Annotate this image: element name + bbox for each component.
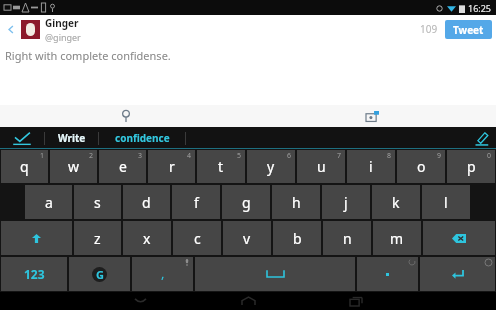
button[interactable]: Handwriting — [466, 127, 496, 149]
button[interactable]: a — [25, 185, 72, 219]
staticText: 5 — [237, 151, 242, 161]
staticText: Write — [58, 131, 86, 145]
staticText: v — [243, 229, 251, 248]
button[interactable]: Add location — [116, 106, 136, 126]
staticText: 16:25 — [468, 2, 492, 14]
staticText: b — [293, 229, 302, 248]
button[interactable]: k — [372, 185, 420, 219]
staticText: @ginger — [45, 31, 81, 43]
staticText: , — [161, 264, 165, 282]
staticText: Right with complete confidense. — [5, 48, 171, 63]
staticText: l — [444, 193, 448, 212]
staticText: f — [194, 193, 199, 212]
button[interactable]: b — [273, 221, 321, 255]
button[interactable]: r — [148, 150, 195, 183]
staticText: 109 — [420, 22, 438, 36]
button[interactable]: Tweet — [445, 20, 492, 39]
button[interactable]: e — [99, 150, 146, 183]
staticText: 9 — [437, 151, 442, 161]
staticText: 2 — [89, 151, 94, 161]
button[interactable]: z — [74, 221, 121, 255]
button[interactable]: s — [74, 185, 121, 219]
button[interactable]: Home — [212, 292, 284, 310]
staticText: c — [194, 229, 201, 248]
button[interactable]: Shift — [1, 221, 72, 255]
staticText: w — [68, 157, 80, 176]
button[interactable]: l — [422, 185, 470, 219]
staticText: o — [417, 157, 426, 176]
button[interactable]: g — [222, 185, 270, 219]
staticText: 1 — [40, 151, 45, 161]
staticText: 123 — [24, 266, 45, 282]
button[interactable]: o — [397, 150, 445, 183]
button[interactable]: u — [297, 150, 345, 183]
button[interactable]: n — [323, 221, 371, 255]
button[interactable]: q — [1, 150, 48, 183]
button[interactable]: p — [447, 150, 495, 183]
button[interactable]: , — [132, 257, 193, 291]
staticText: Ginger — [45, 16, 79, 30]
staticText: k — [392, 193, 400, 212]
button[interactable]: Write — [45, 127, 98, 149]
staticText: 8 — [387, 151, 392, 161]
button[interactable]: Accept suggestion — [0, 127, 44, 149]
button[interactable]: x — [123, 221, 171, 255]
button[interactable]: confidence — [99, 127, 185, 149]
staticText: 4 — [187, 151, 192, 161]
staticText: s — [94, 193, 101, 212]
staticText: p — [467, 157, 476, 176]
staticText: z — [94, 229, 101, 248]
button[interactable]: y — [247, 150, 295, 183]
button[interactable]: Add photo — [362, 106, 382, 126]
button[interactable] — [357, 257, 418, 291]
staticText: e — [119, 157, 127, 176]
staticText: y — [267, 157, 275, 176]
staticText: h — [292, 193, 301, 212]
button[interactable]: Navigate up — [4, 22, 18, 36]
button[interactable]: Space — [195, 257, 355, 291]
staticText: G — [96, 267, 104, 282]
staticText: a — [45, 193, 53, 212]
button[interactable]: 123 — [1, 257, 67, 291]
button[interactable]: t — [197, 150, 245, 183]
button[interactable]: j — [322, 185, 370, 219]
staticText: Tweet — [453, 23, 484, 37]
button[interactable]: w — [50, 150, 97, 183]
staticText: x — [143, 229, 151, 248]
staticText: confidence — [115, 131, 170, 145]
button[interactable]: Back — [104, 292, 176, 310]
staticText: 7 — [337, 151, 342, 161]
button[interactable]: c — [173, 221, 221, 255]
button[interactable]: h — [272, 185, 320, 219]
staticText: 3 — [138, 151, 143, 161]
button[interactable]: Google search — [69, 257, 130, 291]
button[interactable]: i — [347, 150, 395, 183]
staticText: r — [169, 157, 175, 176]
button[interactable]: m — [373, 221, 421, 255]
staticText: n — [343, 229, 352, 248]
button[interactable]: Recent apps — [320, 292, 392, 310]
staticText: d — [142, 193, 151, 212]
button[interactable]: f — [172, 185, 220, 219]
staticText: i — [369, 157, 373, 176]
button[interactable]: v — [223, 221, 271, 255]
staticText: t — [218, 157, 224, 176]
button[interactable]: Delete — [423, 221, 495, 255]
staticText: 6 — [287, 151, 292, 161]
staticText: j — [344, 193, 348, 212]
button[interactable]: d — [123, 185, 170, 219]
staticText: u — [317, 157, 326, 176]
button[interactable]: Enter — [420, 257, 495, 291]
staticText: q — [20, 157, 29, 176]
staticText: 0 — [487, 151, 492, 161]
staticText: m — [390, 229, 404, 248]
staticText: g — [242, 193, 251, 212]
